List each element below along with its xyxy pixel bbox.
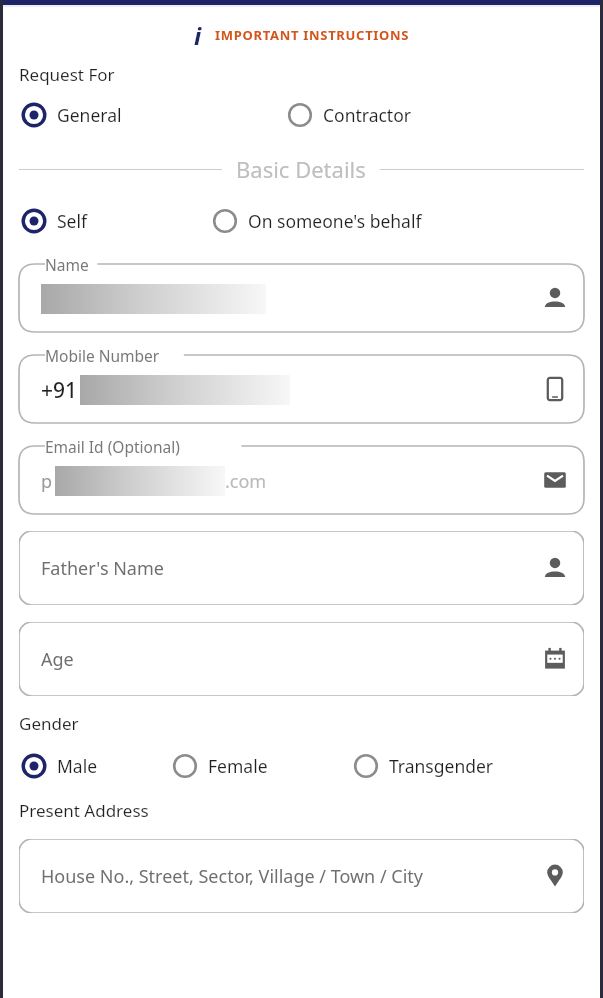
staticText: Request For (19, 63, 115, 86)
staticText: Email Id (Optional) (45, 436, 180, 457)
staticText: Self (57, 209, 88, 233)
staticText: Contractor (323, 103, 412, 127)
staticText: General (57, 103, 122, 127)
button[interactable]: Contractor (285, 100, 603, 130)
button[interactable]: Male (19, 751, 170, 781)
staticText: Age (41, 647, 74, 672)
button[interactable]: House No., Street, Sector, Village / Tow… (540, 861, 570, 891)
staticText: Name (45, 254, 89, 275)
button[interactable]: Father's Name (19, 527, 584, 605)
button[interactable]: Mobile Number (19, 345, 584, 423)
button[interactable]: Father's Name (540, 553, 570, 583)
button[interactable]: Email Id (Optional) (540, 465, 570, 495)
button[interactable]: i (0, 7, 603, 63)
staticText: On someone's behalf (248, 209, 422, 233)
staticText: .com (225, 469, 267, 494)
button[interactable]: Transgender (351, 751, 603, 781)
staticText: Gender (19, 712, 79, 735)
staticText: Transgender (389, 754, 494, 778)
staticText: +91 (41, 376, 78, 405)
button[interactable]: Age (540, 644, 570, 674)
staticText: Male (57, 754, 98, 778)
staticText: Father's Name (41, 556, 164, 581)
button[interactable]: Email Id (Optional) (19, 436, 584, 514)
button[interactable]: Self (19, 206, 210, 236)
button[interactable]: Name (540, 283, 570, 313)
button[interactable]: On someone's behalf (210, 206, 603, 236)
staticText: IMPORTANT INSTRUCTIONS (215, 26, 410, 44)
staticText: Present Address (19, 799, 149, 822)
button[interactable]: Age (19, 618, 584, 696)
staticText: Female (208, 754, 268, 778)
staticText: Mobile Number (45, 345, 160, 366)
button[interactable]: House No., Street, Sector, Village / Tow… (19, 835, 584, 913)
button[interactable]: Female (170, 751, 351, 781)
button[interactable]: Name (19, 254, 584, 332)
staticText: Basic Details (236, 154, 366, 184)
button[interactable]: General (19, 100, 285, 130)
staticText: i (194, 19, 202, 52)
staticText: House No., Street, Sector, Village / Tow… (41, 864, 423, 889)
button[interactable]: Mobile Number (540, 374, 570, 404)
staticText: p (41, 469, 53, 494)
